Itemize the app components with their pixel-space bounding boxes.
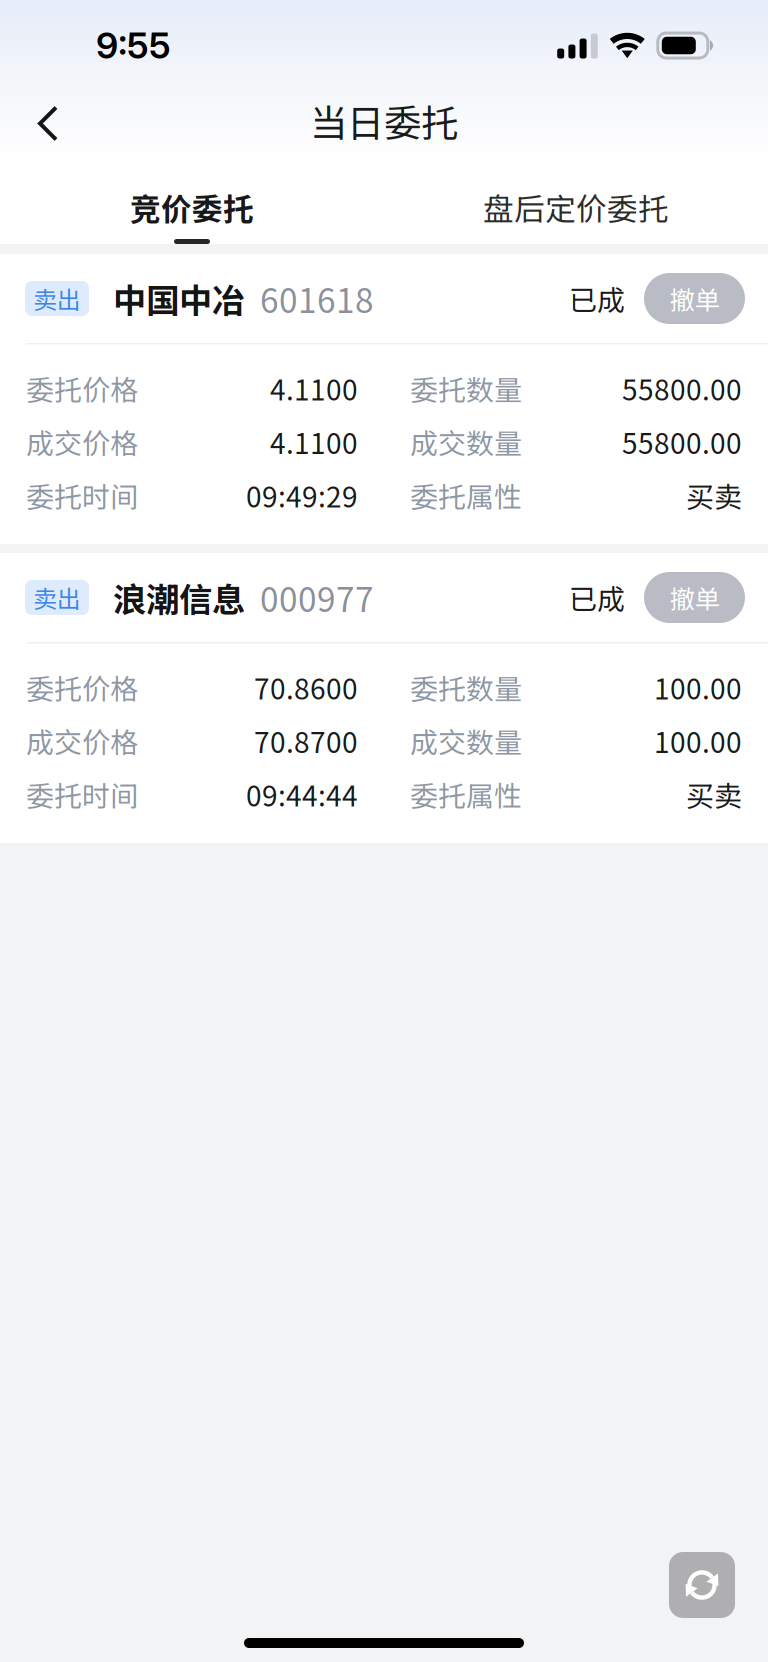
staticText: 09:44:44 (246, 774, 358, 814)
staticText: 卖出 (33, 281, 81, 316)
button[interactable]: 返回 (15, 89, 81, 157)
staticText: 成交数量 (410, 421, 522, 462)
staticText: 100.00 (654, 667, 742, 707)
staticText: 委托属性 (410, 475, 522, 515)
staticText: 买卖 (686, 774, 742, 814)
staticText: 当日委托 (310, 93, 458, 148)
staticText: 成交价格 (26, 421, 138, 462)
staticText: 9:55 (96, 24, 171, 67)
staticText: 中国中冶 (113, 274, 245, 323)
staticText: 撤单 (669, 280, 719, 317)
staticText: 55800.00 (622, 421, 742, 462)
staticText: 000977 (260, 573, 374, 622)
staticText: 70.8700 (254, 720, 358, 761)
staticText: 盘后定价委托 (483, 185, 669, 229)
button[interactable]: 盘后定价委托 (384, 166, 768, 244)
staticText: 委托数量 (410, 368, 522, 408)
staticText: 委托属性 (410, 774, 522, 814)
staticText: 已成 (569, 577, 625, 618)
button[interactable]: 刷新 (669, 1552, 735, 1618)
staticText: 撤单 (669, 579, 719, 616)
staticText: 浪潮信息 (113, 573, 245, 622)
staticText: 已成 (569, 278, 625, 319)
staticText: 成交价格 (26, 720, 138, 761)
button[interactable]: 撤单 (644, 273, 745, 324)
button[interactable]: 撤单 (644, 572, 745, 623)
button[interactable]: 竞价委托 (0, 166, 384, 244)
staticText: 09:49:29 (246, 475, 358, 515)
staticText: 55800.00 (622, 368, 742, 408)
staticText: 委托数量 (410, 667, 522, 707)
staticText: 601618 (260, 274, 374, 323)
staticText: 成交数量 (410, 720, 522, 761)
staticText: 委托价格 (26, 368, 138, 408)
staticText: 4.1100 (270, 421, 358, 462)
staticText: 70.8600 (254, 667, 358, 707)
staticText: 委托时间 (26, 475, 138, 515)
staticText: 卖出 (33, 580, 81, 615)
staticText: 委托价格 (26, 667, 138, 707)
staticText: 4.1100 (270, 368, 358, 408)
staticText: 委托时间 (26, 774, 138, 814)
staticText: 竞价委托 (130, 185, 254, 229)
staticText: 买卖 (686, 475, 742, 515)
staticText: 100.00 (654, 720, 742, 761)
